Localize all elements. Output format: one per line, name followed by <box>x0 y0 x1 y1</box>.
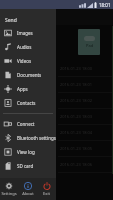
button[interactable]: Images <box>0 26 56 40</box>
staticText: Documents <box>17 72 42 78</box>
button[interactable]: View log <box>0 145 56 159</box>
button[interactable]: Contacts <box>0 96 56 110</box>
staticText: Videos <box>17 58 32 64</box>
staticText: Settings <box>1 191 17 196</box>
staticText: 2016-01-23 18:01 <box>60 82 93 87</box>
staticText: Bluetooth settings <box>17 135 56 141</box>
button[interactable]: Exit <box>37 178 56 200</box>
staticText: 2016-01-23 18:06 <box>60 162 93 167</box>
staticText: 2016-01-23 18:02 <box>60 98 93 103</box>
staticText: Send <box>5 17 17 24</box>
staticText: 2016-01-23 18:04 <box>60 130 93 135</box>
staticText: View log <box>17 149 35 155</box>
button[interactable]: About <box>18 178 37 200</box>
staticText: Contacts <box>17 100 36 106</box>
button[interactable]: Audios <box>0 40 56 54</box>
staticText: About <box>22 191 34 196</box>
button[interactable]: Bluetooth settings <box>0 131 56 145</box>
staticText: Exit <box>43 191 50 196</box>
button[interactable]: Documents <box>0 68 56 82</box>
staticText: 2016-01-23 18:00 <box>60 66 93 71</box>
button[interactable]: Apps <box>0 82 56 96</box>
button[interactable]: Videos <box>0 54 56 68</box>
staticText: 2016-01-23 18:03 <box>60 114 93 119</box>
staticText: Audios <box>17 44 32 50</box>
staticText: Pad <box>86 43 94 48</box>
staticText: 2016-01-23 18:05 <box>60 146 93 151</box>
staticText: SD card permission <box>17 163 56 169</box>
button[interactable]: Settings <box>0 178 18 200</box>
staticText: 18:01 <box>99 2 111 8</box>
button[interactable]: Connect <box>0 117 56 131</box>
staticText: Connect <box>17 121 35 127</box>
staticText: Apps <box>17 86 28 92</box>
button[interactable]: SD card permission <box>0 159 56 173</box>
staticText: Images <box>17 30 33 36</box>
